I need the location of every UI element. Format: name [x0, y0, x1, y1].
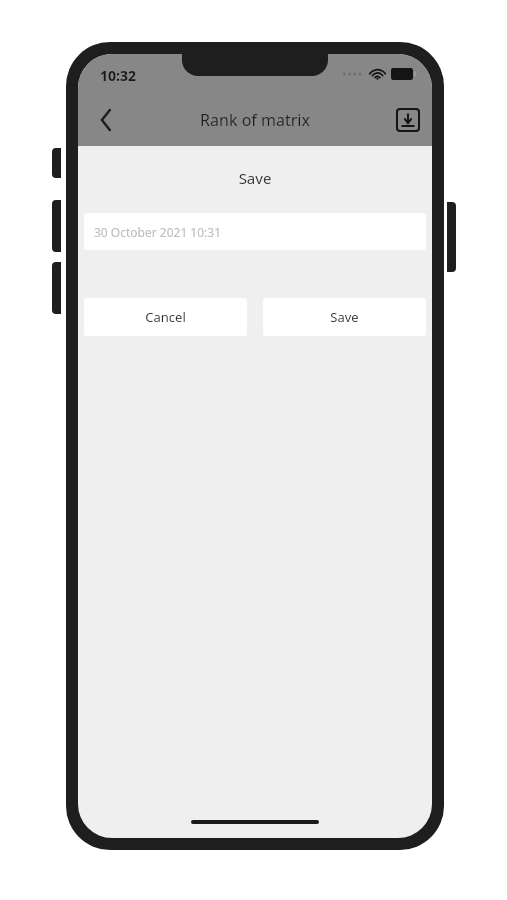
staticText: 10:32 [100, 66, 136, 85]
button[interactable]: Save [263, 298, 426, 336]
staticText: Save [78, 168, 432, 188]
button[interactable]: Cancel [84, 298, 247, 336]
staticText: Cancel [145, 308, 186, 326]
button[interactable]: Download [394, 106, 422, 134]
staticText: 30 October 2021 10:31 [94, 224, 222, 240]
button[interactable]: 30 October 2021 10:31 [84, 213, 426, 250]
staticText: Save [330, 308, 359, 326]
staticText: Rank of matrix [200, 109, 310, 131]
button[interactable]: Back [86, 100, 126, 140]
